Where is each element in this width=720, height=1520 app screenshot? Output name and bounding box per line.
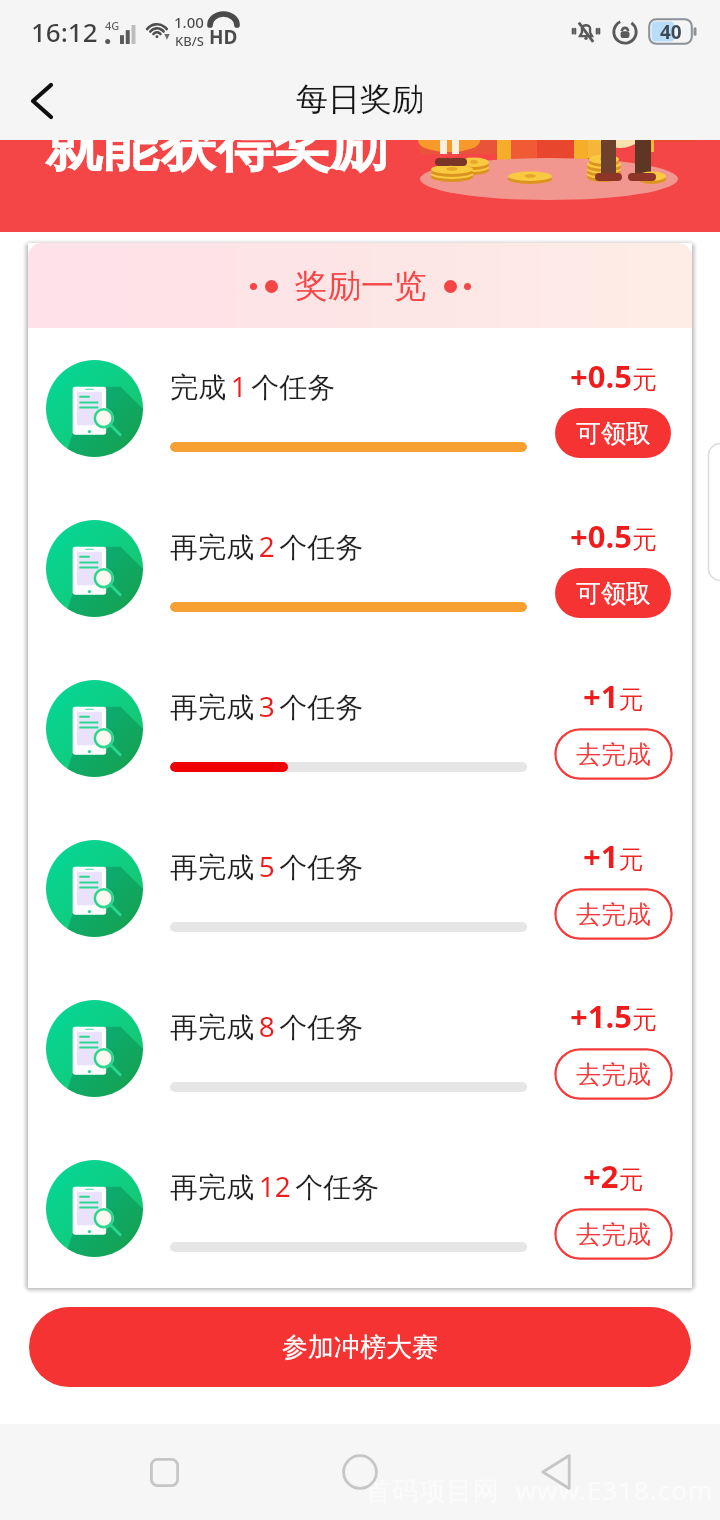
button[interactable]: Recent apps — [128, 1436, 200, 1508]
staticText: 可领取 — [576, 578, 651, 609]
button[interactable]: 去完成 — [554, 888, 673, 940]
button[interactable]: Home — [324, 1436, 396, 1508]
button[interactable]: 再完成 12 个任务 — [28, 1128, 692, 1288]
staticText: 参加冲榜大赛 — [282, 1331, 438, 1364]
button[interactable]: 完成 1 个任务 — [28, 328, 692, 488]
button[interactable]: 再完成 3 个任务 — [28, 648, 692, 808]
button[interactable]: 可领取 — [555, 568, 671, 618]
button[interactable]: 再完成 8 个任务 — [28, 968, 692, 1128]
staticText: 16:12 — [31, 14, 98, 49]
staticText: 再完成 5 个任务 — [170, 847, 364, 885]
staticText: 就能获得奖励 — [45, 140, 387, 182]
staticText: 完成 1 个任务 — [170, 367, 336, 405]
staticText: +1元 — [583, 835, 644, 877]
staticText: HD — [209, 24, 238, 50]
staticText: +1元 — [583, 675, 644, 717]
staticText: KB/S — [175, 32, 204, 50]
staticText: +0.5元 — [570, 355, 657, 397]
staticText: 奖励一览 — [295, 265, 427, 307]
staticText: 去完成 — [576, 739, 651, 770]
button[interactable]: 去完成 — [554, 728, 673, 780]
staticText: 每日奖励 — [296, 79, 424, 119]
staticText: +0.5元 — [570, 515, 657, 557]
staticText: +1.5元 — [570, 995, 657, 1037]
button[interactable]: 参加冲榜大赛 — [29, 1307, 691, 1387]
button[interactable]: Back — [520, 1436, 592, 1508]
staticText: 再完成 2 个任务 — [170, 527, 364, 565]
button[interactable]: 去完成 — [554, 1048, 673, 1100]
staticText: 再完成 12 个任务 — [170, 1167, 380, 1205]
button[interactable]: 去完成 — [554, 1208, 673, 1260]
staticText: 去完成 — [576, 1059, 651, 1090]
button[interactable]: Back — [0, 62, 78, 140]
staticText: 1.00 — [174, 12, 204, 32]
staticText: 去完成 — [576, 1219, 651, 1250]
button[interactable]: 再完成 5 个任务 — [28, 808, 692, 968]
staticText: 首码项目网 www.E318.com — [365, 1472, 714, 1508]
staticText: 再完成 8 个任务 — [170, 1007, 364, 1045]
button[interactable]: 再完成 2 个任务 — [28, 488, 692, 648]
button[interactable]: 可领取 — [555, 408, 671, 458]
staticText: 4G — [105, 18, 120, 33]
staticText: 可领取 — [576, 418, 651, 449]
staticText: +2元 — [583, 1155, 644, 1197]
staticText: 去完成 — [576, 899, 651, 930]
staticText: 40 — [660, 19, 682, 45]
staticText: 再完成 3 个任务 — [170, 687, 364, 725]
